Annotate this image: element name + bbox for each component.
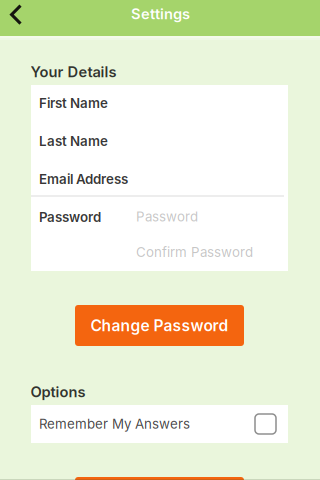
button[interactable]: Remember My Answers: [31, 405, 288, 443]
staticText: Options: [30, 383, 85, 401]
staticText: Password: [136, 208, 198, 225]
staticText: Settings: [131, 5, 190, 23]
staticText: Confirm Password: [136, 244, 253, 260]
button[interactable]: Save Settings: [75, 477, 244, 480]
button[interactable]: Back: [0, 0, 32, 29]
staticText: Your Details: [30, 63, 116, 81]
staticText: Change Password: [90, 316, 228, 335]
staticText: Last Name: [39, 133, 108, 149]
staticText: Password: [39, 209, 101, 225]
staticText: Email Address: [39, 171, 128, 187]
button[interactable]: Change Password: [75, 305, 244, 346]
staticText: First Name: [39, 95, 108, 111]
staticText: Remember My Answers: [39, 416, 190, 432]
